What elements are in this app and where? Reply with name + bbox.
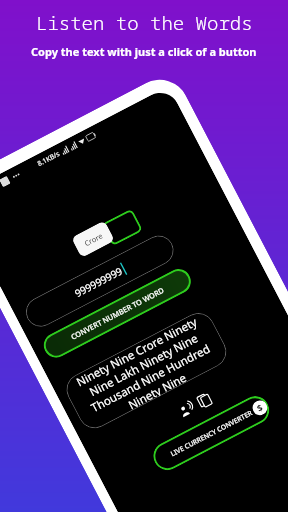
- staticText: 999999999: [72, 264, 125, 300]
- button[interactable]: 999999999: [21, 230, 179, 332]
- button[interactable]: Crore: [71, 220, 115, 258]
- button[interactable]: Speak text: [175, 398, 198, 421]
- staticText: Copy the text with just a click of a but…: [31, 44, 257, 59]
- staticText: Crore: [82, 230, 104, 248]
- button[interactable]: [101, 208, 143, 246]
- button[interactable]: LIVE CURRENCY CONVERTER: [148, 391, 274, 475]
- staticText: Listen to the Words: [36, 10, 253, 36]
- staticText: 8.1KB/s: [36, 149, 61, 168]
- button[interactable]: CONVERT NUMBER TO WORD: [39, 265, 195, 362]
- button[interactable]: Copy text: [193, 388, 216, 412]
- staticText: LIVE CURRENCY CONVERTER: [169, 408, 254, 458]
- staticText: $: [255, 401, 265, 414]
- button[interactable]: Currency: [250, 398, 270, 418]
- staticText: CONVERT NUMBER TO WORD: [69, 285, 165, 342]
- staticText: Ninety Nine Crore Ninety Nine Lakh Ninet…: [69, 312, 224, 430]
